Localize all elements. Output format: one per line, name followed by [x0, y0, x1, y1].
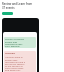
staticText: Anomaly [5, 52, 16, 55]
staticText: Review and Learn from [2, 2, 33, 6]
button[interactable]: Anomaly [4, 51, 36, 72]
staticText: Cluster of related events was detected a… [5, 38, 25, 48]
staticText: 37 events [2, 6, 15, 10]
button[interactable] [2, 12, 13, 15]
staticText: Unusual spike in activity was recorded a… [5, 56, 26, 72]
button[interactable]: Cluster of related events was detected a… [4, 37, 36, 48]
